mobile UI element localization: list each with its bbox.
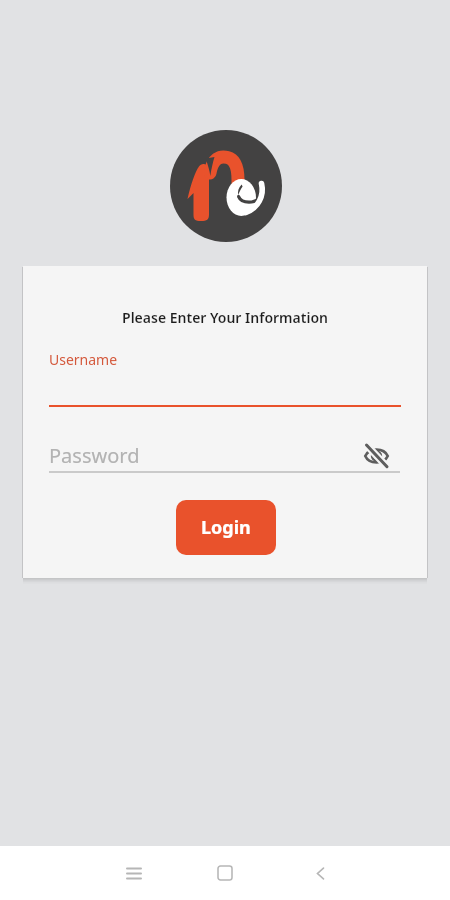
- staticText: Login: [201, 515, 251, 540]
- staticText: Username: [49, 350, 118, 369]
- button[interactable]: Home: [201, 846, 249, 900]
- staticText: Please Enter Your Information: [23, 308, 427, 327]
- button[interactable]: Login: [176, 500, 276, 555]
- button[interactable]: Show password: [359, 438, 393, 472]
- button[interactable]: Back: [296, 846, 344, 900]
- staticText: Password: [49, 442, 359, 469]
- button[interactable]: Recent apps: [110, 846, 158, 900]
